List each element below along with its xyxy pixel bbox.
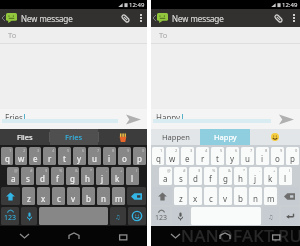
button[interactable]: 0 (133, 147, 146, 165)
button[interactable]: v (67, 187, 80, 205)
button[interactable]: Emoji (128, 207, 146, 225)
button[interactable]: Voice input (172, 207, 189, 225)
button[interactable]: 6 (226, 147, 239, 165)
button[interactable]: More options (288, 9, 300, 27)
button[interactable]: Send (120, 109, 147, 129)
staticText: h (238, 173, 243, 184)
staticText: & (228, 168, 231, 173)
button[interactable]: 7 (241, 147, 254, 165)
staticText: 1 (160, 148, 163, 153)
button[interactable]: Fries (50, 129, 98, 145)
button[interactable]: * (81, 167, 94, 185)
button[interactable]: Backspace (279, 187, 299, 205)
button[interactable]: 5 (58, 147, 71, 165)
button[interactable]: c (52, 187, 65, 205)
button[interactable]: n (97, 187, 110, 205)
button[interactable]: Shift (1, 187, 20, 205)
staticText: $ (45, 168, 48, 173)
button[interactable]: 4 (43, 147, 56, 165)
button[interactable]: + (111, 167, 124, 185)
button[interactable]: 1 (152, 147, 164, 165)
staticText: % (59, 168, 63, 173)
staticText: s (26, 173, 30, 184)
button[interactable]: 9 (271, 147, 284, 165)
button[interactable]: 5 (211, 147, 224, 165)
button[interactable]: ( (279, 167, 292, 185)
button[interactable]: 7 (88, 147, 101, 165)
button[interactable]: % (204, 167, 217, 185)
button[interactable]: 8 (103, 147, 116, 165)
button[interactable]: b (82, 187, 95, 205)
button[interactable]: Home (49, 226, 98, 246)
button[interactable]: b (234, 187, 247, 205)
button[interactable]: Emoji (281, 207, 299, 225)
button[interactable]: # (21, 167, 34, 185)
button[interactable]: z (22, 187, 35, 205)
button[interactable]: & (219, 167, 232, 185)
button[interactable]: - (96, 167, 109, 185)
button[interactable]: Emoji suggestion (250, 129, 300, 145)
button[interactable]: Attach (115, 9, 135, 27)
button[interactable]: Navigate up (2, 9, 17, 27)
button[interactable]: Home (200, 226, 250, 246)
button[interactable]: m (264, 187, 277, 205)
button[interactable]: Symbols and emoji (110, 207, 126, 225)
button[interactable]: - (249, 167, 262, 185)
button[interactable]: z (174, 187, 187, 205)
button[interactable]: 4 (196, 147, 209, 165)
button[interactable]: Recents (98, 226, 147, 246)
button[interactable]: 2 (15, 147, 27, 165)
staticText: u (92, 153, 97, 164)
button[interactable]: # (174, 167, 187, 185)
button[interactable]: Recents (250, 226, 300, 246)
staticText: w (18, 153, 25, 164)
button[interactable]: ( (126, 167, 139, 185)
button[interactable]: % (51, 167, 64, 185)
button[interactable]: Symbols and emoji (263, 207, 279, 225)
button[interactable]: x (189, 187, 202, 205)
button[interactable]: * (234, 167, 247, 185)
button[interactable]: Send (273, 109, 300, 129)
button[interactable]: n (249, 187, 262, 205)
staticText: 3 (37, 148, 40, 153)
button[interactable]: Happy (200, 129, 250, 145)
button[interactable]: Symbols (152, 207, 170, 225)
button[interactable]: Emoji suggestion (99, 129, 147, 145)
button[interactable]: 3 (29, 147, 41, 165)
button[interactable]: & (66, 167, 79, 185)
button[interactable]: Flies (0, 129, 49, 145)
button[interactable]: m (112, 187, 125, 205)
staticText: t (216, 153, 219, 164)
button[interactable]: Voice input (21, 207, 37, 225)
staticText: j (254, 173, 257, 184)
button[interactable]: 0 (286, 147, 299, 165)
button[interactable]: Happen (151, 129, 200, 145)
button[interactable]: Navigate up (153, 9, 168, 27)
button[interactable]: @ (159, 167, 172, 185)
button[interactable]: 2 (166, 147, 179, 165)
button[interactable]: To (151, 27, 300, 43)
button[interactable]: 6 (73, 147, 86, 165)
button[interactable]: c (204, 187, 217, 205)
button[interactable]: 3 (181, 147, 194, 165)
button[interactable]: Shift (152, 187, 172, 205)
button[interactable]: v (219, 187, 232, 205)
button[interactable]: $ (36, 167, 49, 185)
button[interactable]: + (264, 167, 277, 185)
button[interactable]: 1 (1, 147, 13, 165)
button[interactable]: Symbols (1, 207, 19, 225)
button[interactable]: Backspace (127, 187, 146, 205)
button[interactable]: @ (7, 167, 19, 185)
button[interactable]: $ (189, 167, 202, 185)
button[interactable]: Back (0, 226, 49, 246)
button[interactable]: 9 (118, 147, 131, 165)
button[interactable]: Attach (268, 9, 288, 27)
button[interactable]: x (37, 187, 50, 205)
button[interactable]: Back (151, 226, 200, 246)
button[interactable]: More options (135, 9, 147, 27)
button[interactable]: 8 (256, 147, 269, 165)
button[interactable]: To (0, 27, 147, 43)
staticText: q (5, 153, 10, 164)
